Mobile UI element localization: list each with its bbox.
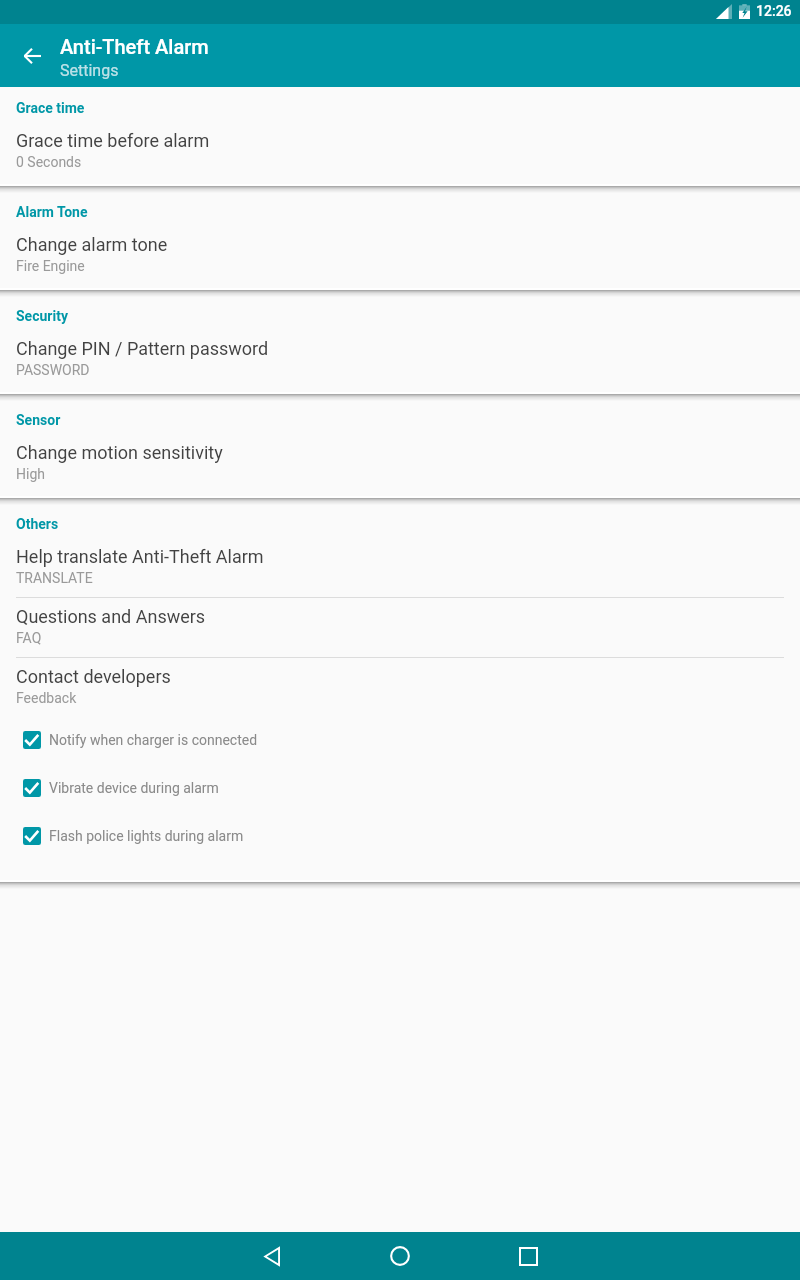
button[interactable]: Grace time before alarm [0,116,800,184]
staticText: Alarm Tone [16,204,88,220]
button[interactable]: Flash police lights during alarm [0,812,800,860]
staticText: Fire Engine [16,258,85,274]
button[interactable]: Notify when charger is connected [0,706,800,764]
staticText: Change motion sensitivity [16,442,223,463]
staticText: 12:26 [756,3,792,19]
staticText: Change alarm tone [16,234,168,255]
staticText: PASSWORD [16,362,90,378]
staticText: High [16,466,45,482]
staticText: Anti-Theft Alarm [60,35,209,58]
staticText: Security [16,308,68,324]
staticText: Grace time [16,100,85,116]
button[interactable]: Vibrate device during alarm [0,764,800,812]
staticText: Help translate Anti-Theft Alarm [16,546,264,567]
staticText: Settings [60,61,119,80]
button[interactable]: Navigate up [8,32,56,80]
button[interactable]: Help translate Anti-Theft Alarm [0,532,800,597]
staticText: Contact developers [16,666,171,687]
staticText: Others [16,516,59,532]
button[interactable]: Change PIN / Pattern password [0,324,800,392]
button[interactable]: Questions and Answers [0,598,800,657]
staticText: Vibrate device during alarm [49,780,219,796]
button[interactable]: Recent apps [504,1232,552,1280]
button[interactable]: Change alarm tone [0,220,800,288]
staticText: Feedback [16,690,77,706]
staticText: TRANSLATE [16,570,93,586]
staticText: Flash police lights during alarm [49,828,244,844]
button[interactable]: Back [248,1232,296,1280]
staticText: FAQ [16,630,42,646]
staticText: 0 Seconds [16,154,82,170]
staticText: Notify when charger is connected [49,732,258,748]
staticText: Sensor [16,412,61,428]
button[interactable]: Change motion sensitivity [0,428,800,496]
button[interactable]: Contact developers [0,658,800,706]
button[interactable]: Home [376,1232,424,1280]
staticText: Change PIN / Pattern password [16,338,269,359]
staticText: Grace time before alarm [16,130,210,151]
staticText: Questions and Answers [16,606,206,627]
